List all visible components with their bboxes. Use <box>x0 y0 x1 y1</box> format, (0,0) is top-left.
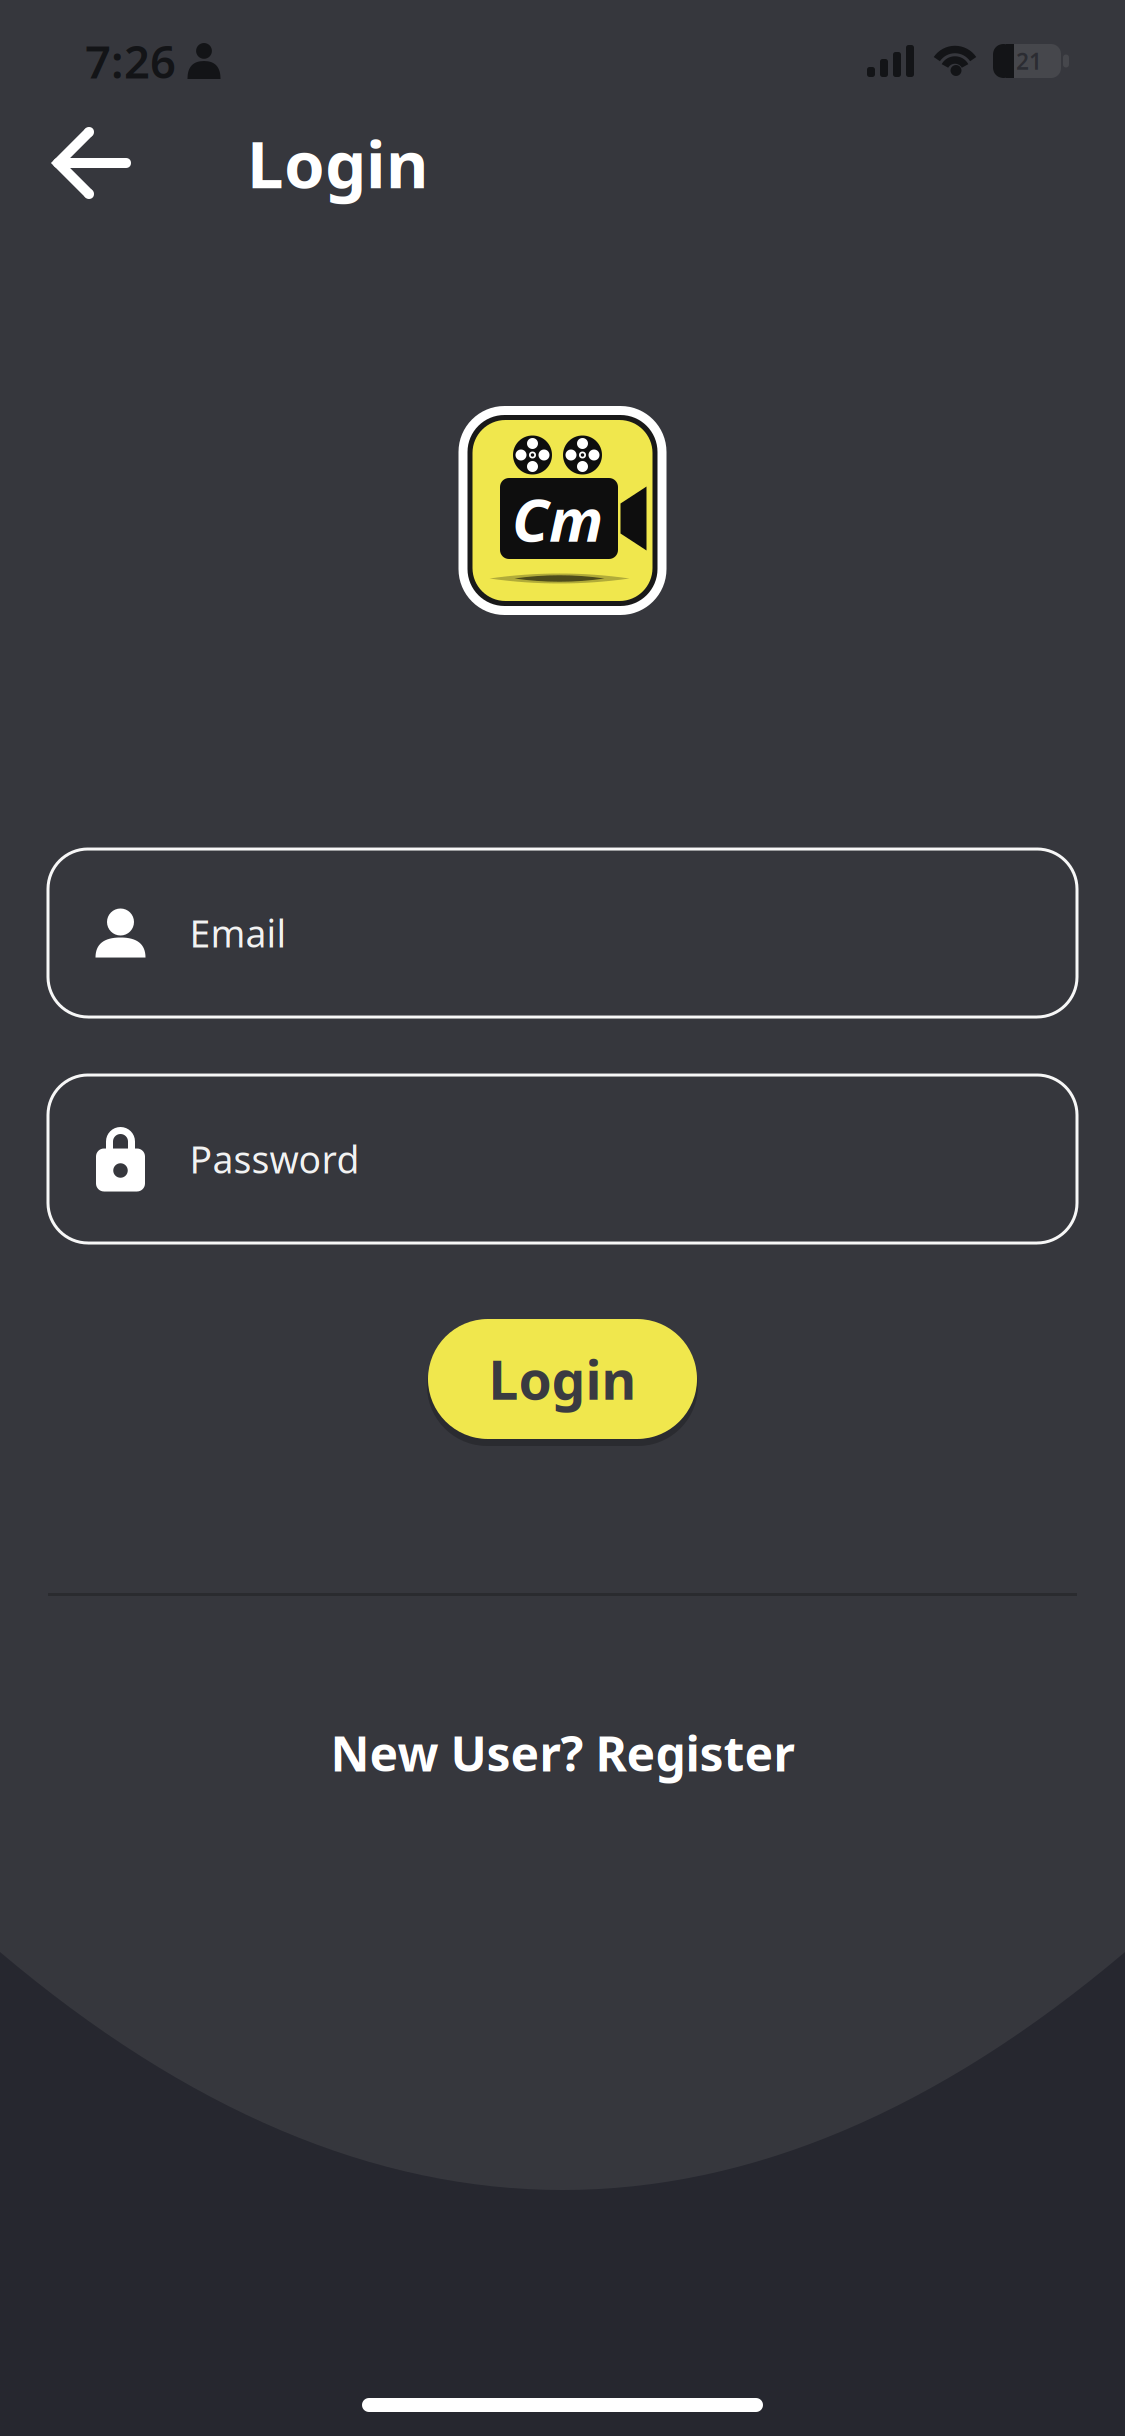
staticText: Password <box>189 1134 359 1184</box>
staticText: Login <box>488 1344 636 1414</box>
button[interactable]: Login <box>428 1319 697 1439</box>
button[interactable]: Back <box>53 129 131 197</box>
button[interactable]: Password <box>48 1075 1077 1243</box>
staticText: 21 <box>1016 46 1042 76</box>
staticText: 7:26 <box>85 31 176 91</box>
button[interactable]: New User? Register <box>330 1721 794 1785</box>
staticText: Email <box>189 908 286 958</box>
staticText: New User? Register <box>330 1721 794 1785</box>
staticText: Login <box>247 120 428 206</box>
staticText: Cm <box>512 479 603 558</box>
button[interactable]: Email <box>48 849 1077 1017</box>
